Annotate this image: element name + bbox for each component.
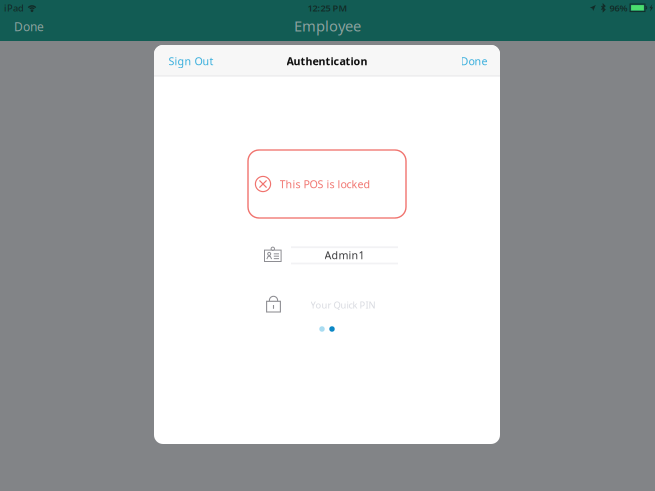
staticText: Your Quick PIN: [310, 299, 375, 311]
staticText: 96%: [609, 2, 627, 14]
staticText: This POS is locked: [279, 177, 370, 191]
button[interactable]: Sign Out: [161, 47, 220, 75]
staticText: 12:25 PM: [307, 2, 347, 14]
staticText: Done: [14, 18, 44, 34]
staticText: Sign Out: [168, 54, 213, 68]
staticText: Authentication: [286, 54, 367, 68]
staticText: Employee: [294, 16, 361, 35]
button[interactable]: Done: [453, 47, 494, 75]
button[interactable]: Done: [6, 16, 52, 37]
staticText: iPad: [4, 2, 24, 14]
staticText: Done: [460, 54, 487, 68]
staticText: Admin1: [324, 248, 364, 262]
